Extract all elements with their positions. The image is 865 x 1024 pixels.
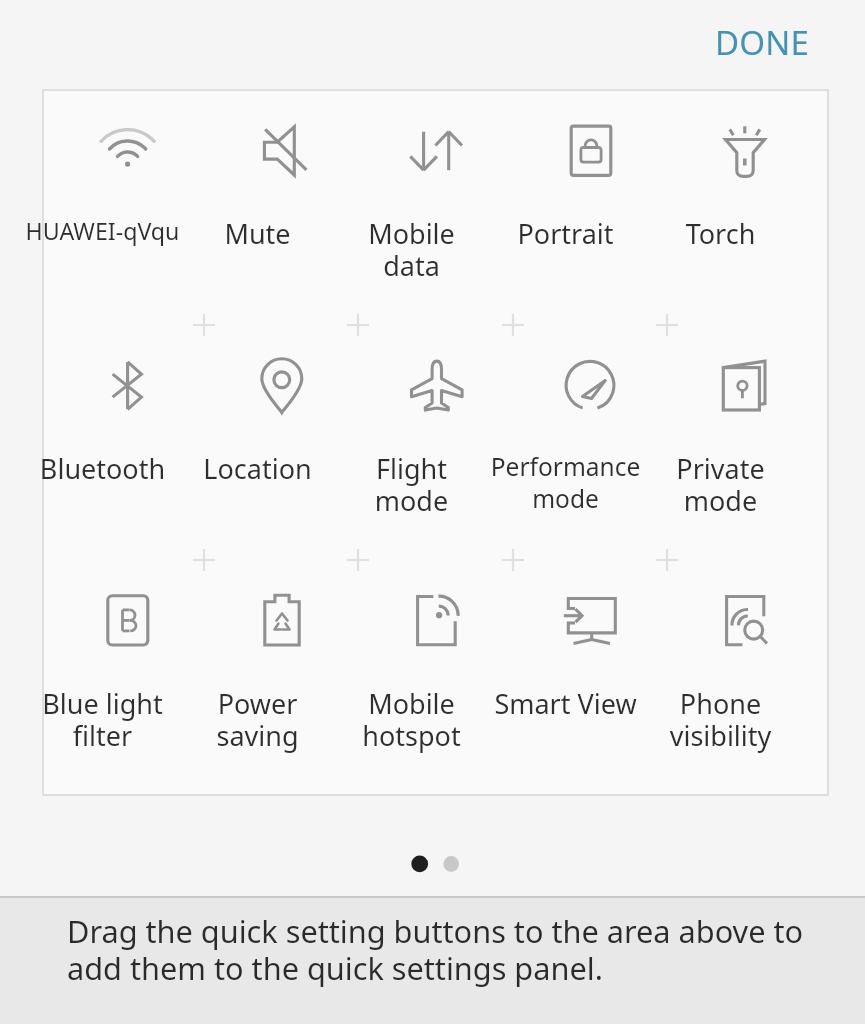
button[interactable]: Torch: [667, 103, 822, 231]
button[interactable]: DONE: [695, 8, 830, 77]
staticText: Smart View: [464, 685, 667, 722]
staticText: DONE: [715, 20, 810, 65]
button[interactable]: Flight mode: [358, 338, 513, 466]
button[interactable]: Performance mode: [512, 338, 667, 466]
button[interactable]: Smart View: [512, 573, 667, 701]
button[interactable]: Private mode: [667, 338, 822, 466]
staticText: Performance mode: [464, 450, 667, 515]
button[interactable]: Phone visibility: [667, 573, 822, 701]
staticText: Mobile hotspot: [310, 685, 513, 754]
staticText: Mute: [156, 215, 359, 252]
staticText: Phone visibility: [619, 685, 822, 754]
staticText: Bluetooth: [1, 450, 204, 487]
staticText: HUAWEI-qVqu: [1, 215, 204, 247]
button[interactable]: Mobile hotspot: [358, 573, 513, 701]
staticText: Drag the quick setting buttons to the ar…: [67, 910, 812, 989]
button[interactable]: Location: [204, 338, 359, 466]
button[interactable]: HUAWEI-qVqu: [49, 103, 204, 231]
button[interactable]: Mobile data: [358, 103, 513, 231]
button[interactable]: Blue light filter: [49, 573, 204, 701]
staticText: Blue light filter: [1, 685, 204, 754]
staticText: Flight mode: [310, 450, 513, 519]
staticText: Portrait: [464, 215, 667, 252]
staticText: Torch: [619, 215, 822, 252]
staticText: Power saving: [156, 685, 359, 754]
staticText: Private mode: [619, 450, 822, 519]
button[interactable]: Power saving: [204, 573, 359, 701]
button[interactable]: Bluetooth: [49, 338, 204, 466]
staticText: Mobile data: [310, 215, 513, 284]
button[interactable]: Portrait: [512, 103, 667, 231]
button[interactable]: Mute: [204, 103, 359, 231]
staticText: Location: [156, 450, 359, 487]
